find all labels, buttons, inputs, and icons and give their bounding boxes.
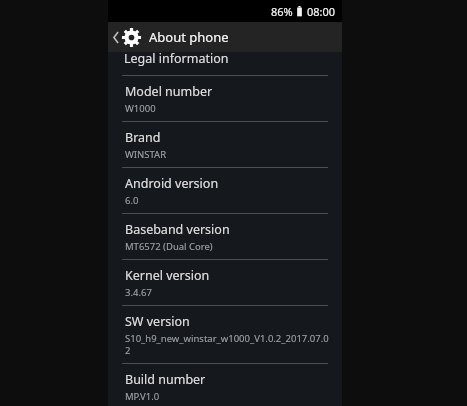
staticText: 86% [271,4,293,19]
staticText: Android version [125,175,219,192]
button[interactable]: Model number [108,76,342,121]
staticText: 08:00 [307,4,336,19]
staticText: MP.V1.0 [125,390,160,403]
staticText: S10_h9_new_winstar_w1000_V1.0.2_2017.07.… [125,332,330,357]
button[interactable]: Android version [108,168,342,213]
staticText: 3.4.67 [125,286,152,299]
staticText: WINSTAR [125,148,167,161]
staticText: Build number [125,371,206,388]
button[interactable]: Back [108,22,342,52]
button[interactable]: Baseband version [108,214,342,259]
button[interactable]: Brand [108,122,342,167]
staticText: Kernel version [125,267,210,284]
staticText: Model number [125,83,213,100]
button[interactable]: Legal information [108,52,342,75]
staticText: Legal information [124,52,229,67]
other: Back [111,24,120,50]
staticText: MT6572 (Dual Core) [125,240,213,253]
staticText: SW version [125,313,190,330]
staticText: Baseband version [125,221,230,238]
staticText: Brand [125,129,161,146]
other: Settings [121,27,142,48]
button[interactable]: Build number [108,364,342,406]
staticText: W1000 [125,102,156,115]
staticText: 6.0 [125,194,139,207]
button[interactable]: SW version [108,306,342,363]
staticText: About phone [149,28,229,46]
button[interactable]: Kernel version [108,260,342,305]
